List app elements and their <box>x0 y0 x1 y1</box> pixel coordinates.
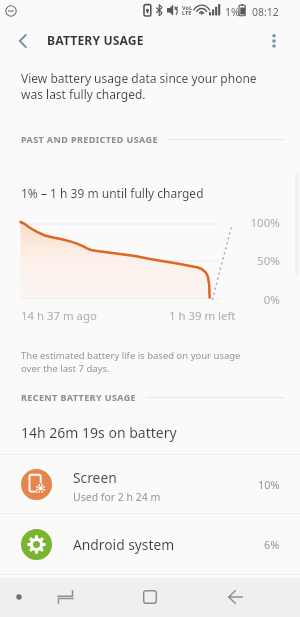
staticText: View battery usage data since your phone… <box>21 70 257 103</box>
staticText: Android system <box>73 535 175 554</box>
staticText: 50% <box>240 253 280 269</box>
staticText: LTE <box>182 9 192 17</box>
staticText: 1% <box>225 5 240 19</box>
button[interactable]: More options <box>258 25 290 57</box>
staticText: 6% <box>264 537 280 552</box>
staticText: 1% – 1 h 39 m until fully charged <box>21 185 204 201</box>
staticText: 1 h 39 m left <box>169 308 236 324</box>
staticText: PAST AND PREDICTED USAGE <box>21 133 158 145</box>
staticText: Screen <box>73 468 117 487</box>
staticText: BATTERY USAGE <box>47 32 144 49</box>
staticText: 0% <box>240 292 280 308</box>
button[interactable]: Recent apps <box>43 575 87 617</box>
staticText: Used for 2 h 24 m <box>73 490 161 504</box>
button[interactable]: Home <box>128 575 172 617</box>
button[interactable]: Navigate up <box>7 25 39 57</box>
button[interactable]: Android system <box>0 514 300 574</box>
staticText: 14 h 37 m ago <box>21 308 97 324</box>
staticText: RECENT BATTERY USAGE <box>21 391 137 403</box>
staticText: 100% <box>240 215 280 231</box>
button[interactable]: Screen <box>0 455 300 513</box>
staticText: The estimated battery life is based on y… <box>21 349 241 375</box>
staticText: VoL <box>182 4 193 12</box>
staticText: 10% <box>258 477 280 492</box>
staticText: 14h 26m 19s on battery <box>21 423 177 442</box>
button[interactable]: Hide keyboard <box>7 585 31 609</box>
staticText: 08:12 <box>252 5 279 19</box>
button[interactable]: Back <box>213 575 257 617</box>
